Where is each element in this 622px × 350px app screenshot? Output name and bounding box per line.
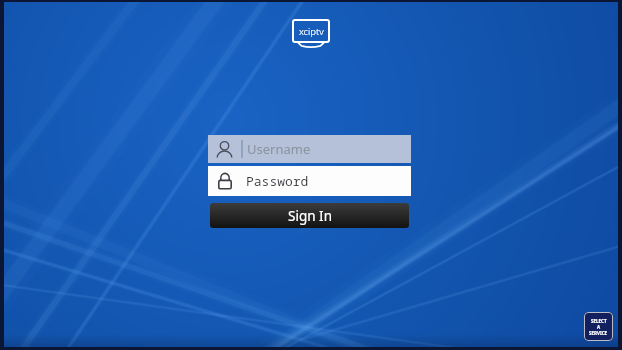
staticText: Sign In <box>288 207 332 225</box>
button[interactable]: Username <box>208 135 411 163</box>
staticText: SERVICE <box>589 330 608 336</box>
button[interactable]: SELECT <box>584 312 613 341</box>
button[interactable]: Password <box>208 166 411 196</box>
staticText: SELECT <box>591 318 607 324</box>
staticText: Password <box>246 172 309 190</box>
staticText: A <box>597 324 601 330</box>
staticText: Username <box>247 140 311 158</box>
button[interactable]: Sign In <box>210 203 409 228</box>
staticText: xciptv <box>299 25 324 38</box>
